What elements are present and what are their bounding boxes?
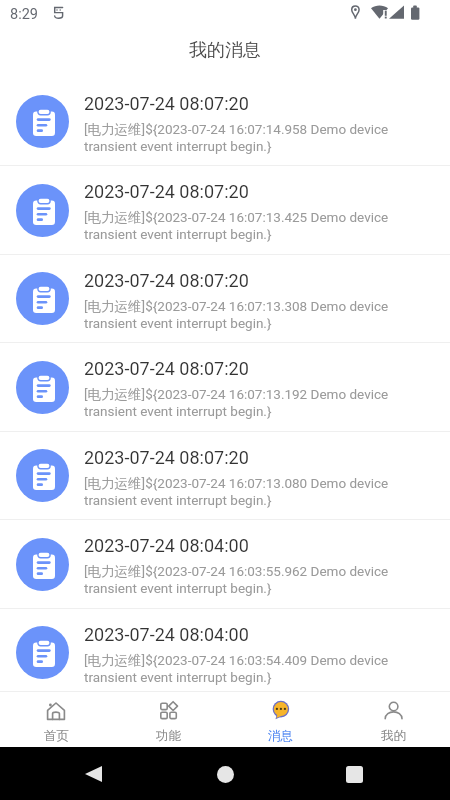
- button[interactable]: 2023-07-24 08:07:20: [0, 255, 450, 343]
- staticText: 我的消息: [189, 39, 261, 62]
- button[interactable]: 消息: [224, 692, 337, 747]
- staticText: 2023-07-24 08:04:00: [84, 535, 249, 556]
- staticText: [电力运维]${2023-07-24 16:07:13.425 Demo dev…: [84, 209, 426, 243]
- button[interactable]: 2023-07-24 08:04:00: [0, 609, 450, 691]
- other: 我的: [384, 701, 404, 721]
- staticText: 2023-07-24 08:07:20: [84, 447, 249, 468]
- staticText: 我的: [381, 728, 406, 744]
- other: 功能: [158, 701, 178, 721]
- staticText: 2023-07-24 08:07:20: [84, 358, 249, 379]
- button[interactable]: 我的: [337, 692, 450, 747]
- button[interactable]: 2023-07-24 08:07:20: [0, 343, 450, 432]
- button[interactable]: 功能: [112, 692, 224, 747]
- button[interactable]: 首页: [0, 692, 112, 747]
- staticText: [电力运维]${2023-07-24 16:07:14.958 Demo dev…: [84, 121, 426, 155]
- button[interactable]: Back: [71, 751, 117, 797]
- button[interactable]: 2023-07-24 08:07:20: [0, 78, 450, 166]
- staticText: [电力运维]${2023-07-24 16:07:13.080 Demo dev…: [84, 475, 426, 509]
- button[interactable]: 2023-07-24 08:07:20: [0, 432, 450, 520]
- button[interactable]: 2023-07-24 08:07:20: [0, 166, 450, 255]
- staticText: [电力运维]${2023-07-24 16:03:55.962 Demo dev…: [84, 563, 426, 597]
- staticText: 2023-07-24 08:07:20: [84, 270, 249, 291]
- other: 首页: [46, 701, 66, 721]
- staticText: 首页: [44, 728, 69, 744]
- staticText: [电力运维]${2023-07-24 16:07:13.308 Demo dev…: [84, 298, 426, 332]
- staticText: 功能: [156, 728, 181, 744]
- button[interactable]: Home: [202, 751, 248, 797]
- staticText: [电力运维]${2023-07-24 16:03:54.409 Demo dev…: [84, 652, 426, 686]
- other: 消息: [271, 701, 291, 721]
- button[interactable]: Recent apps: [331, 751, 377, 797]
- staticText: 2023-07-24 08:07:20: [84, 181, 249, 202]
- staticText: 消息: [268, 728, 293, 744]
- staticText: 2023-07-24 08:04:00: [84, 624, 249, 645]
- staticText: 2023-07-24 08:07:20: [84, 93, 249, 114]
- button[interactable]: 2023-07-24 08:04:00: [0, 520, 450, 609]
- staticText: [电力运维]${2023-07-24 16:07:13.192 Demo dev…: [84, 386, 426, 420]
- staticText: 8:29: [10, 6, 38, 23]
